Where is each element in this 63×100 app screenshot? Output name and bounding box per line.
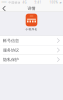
staticText: 帐号信息 <box>3 38 19 43</box>
button[interactable]: 隐私保护 <box>0 55 63 64</box>
staticText: 详情 <box>27 6 35 11</box>
staticText: 9:41 <box>34 1 41 4</box>
staticText: 小程序名 <box>25 28 37 31</box>
staticText: 100% ▰ <box>50 1 62 4</box>
button[interactable]: 帐号信息 <box>0 36 63 45</box>
button[interactable]: Back <box>0 5 10 12</box>
staticText: ••••• 中国移动 4G <box>1 1 26 4</box>
staticText: 隐私保护 <box>3 57 19 62</box>
button[interactable]: 服务协议 <box>0 45 63 55</box>
staticText: 服务协议 <box>3 48 19 52</box>
